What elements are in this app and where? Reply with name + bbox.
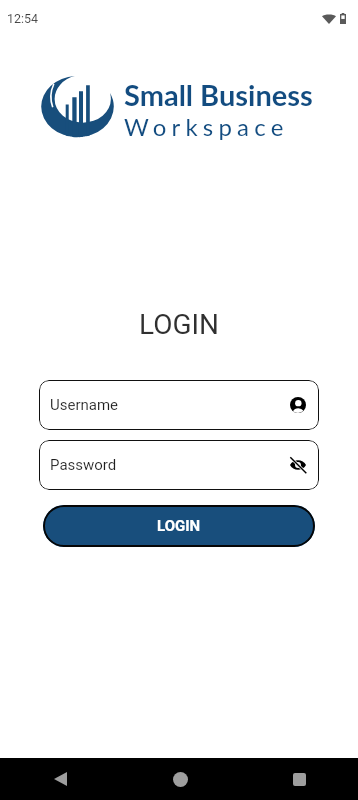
button[interactable]: Username: [39, 380, 319, 430]
button[interactable]: Back: [40, 759, 80, 799]
staticText: Workspace: [124, 112, 289, 141]
staticText: LOGIN: [0, 308, 358, 341]
staticText: Small Business: [124, 77, 313, 112]
button[interactable]: Recent apps: [279, 759, 319, 799]
button[interactable]: Password: [39, 440, 319, 490]
staticText: Password: [50, 456, 290, 474]
button[interactable]: Home: [160, 759, 200, 799]
button[interactable]: LOGIN: [43, 505, 315, 547]
staticText: LOGIN: [157, 517, 201, 535]
staticText: Username: [50, 396, 290, 414]
staticText: 12:54: [7, 11, 39, 26]
